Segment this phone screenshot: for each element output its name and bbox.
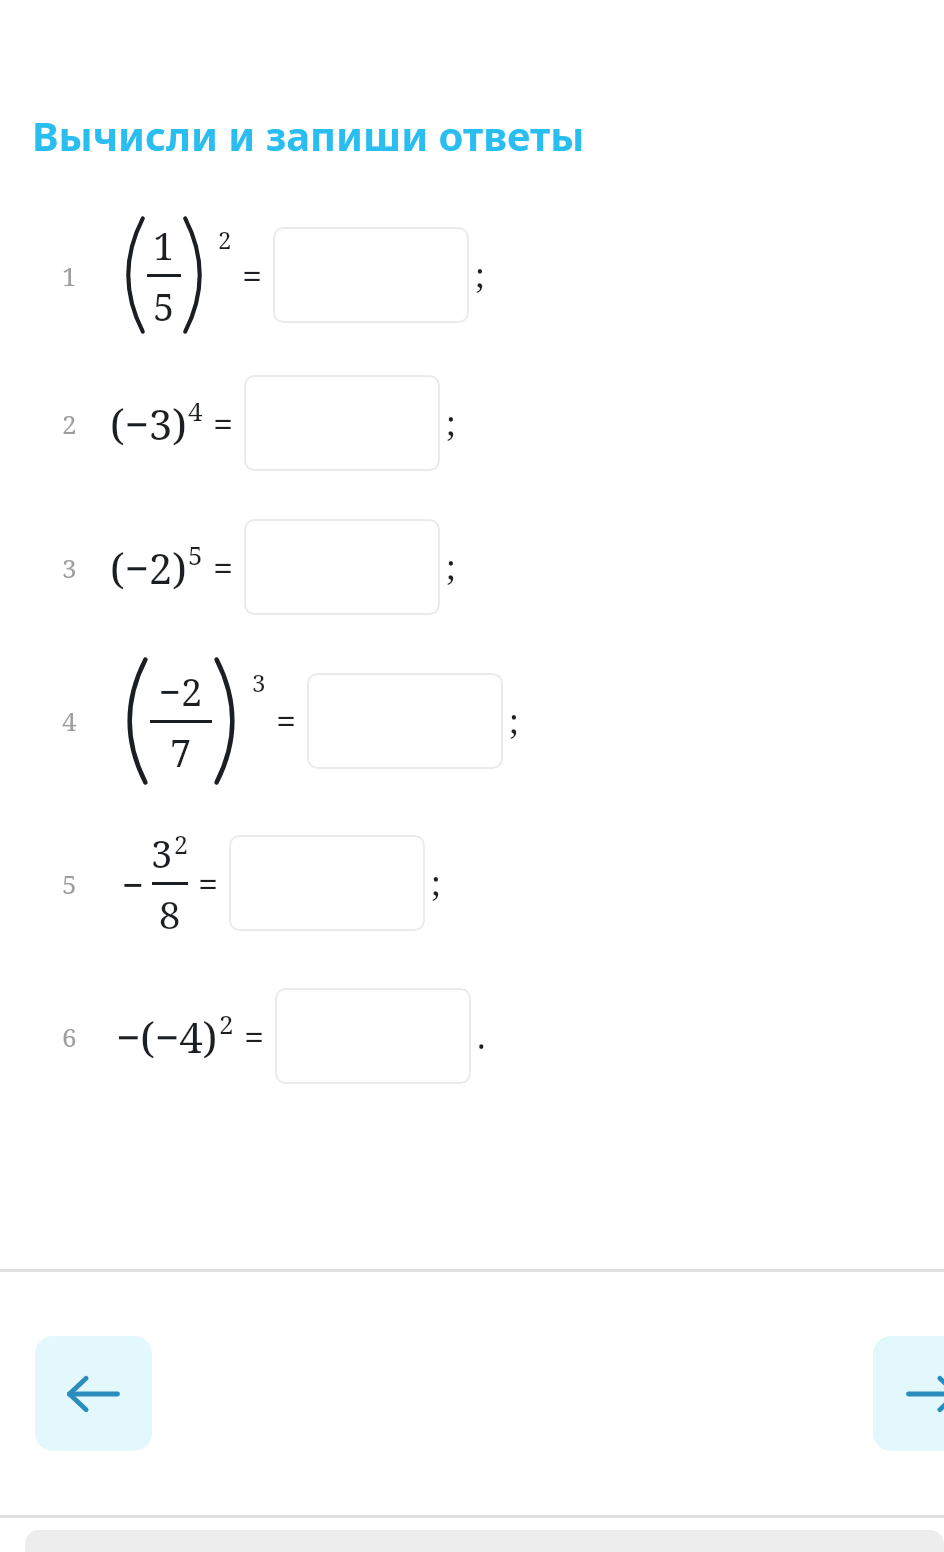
button[interactable] [244,519,440,615]
staticText: = [242,251,263,300]
staticText: 3 [62,550,96,585]
staticText: 2 [218,223,232,256]
staticText: 8 [159,888,181,940]
staticText: = [213,543,234,592]
staticText: 2 [174,827,188,861]
staticText: 5 [188,537,203,572]
button[interactable] [275,988,471,1084]
staticText: = [213,399,234,448]
staticText: = [198,859,219,908]
button[interactable] [273,227,469,323]
staticText: −(−4) [116,1008,218,1065]
button[interactable] [229,835,425,931]
staticText: ; [446,400,456,446]
staticText: 2 [219,1006,234,1041]
staticText: Вычисли и запиши ответы [32,108,585,162]
staticText: 2 [62,406,96,441]
staticText: = [244,1012,265,1061]
button[interactable]: Next [873,1336,944,1451]
staticText: = [276,696,297,745]
staticText: 1 [153,219,175,271]
staticText: . [477,1013,486,1059]
staticText: 7 [170,726,192,778]
staticText: ; [446,544,456,590]
staticText: (−3) [110,395,187,452]
staticText: ; [509,698,519,744]
staticText: 5 [62,866,96,901]
staticText: 4 [62,703,96,738]
staticText: 1 [62,258,96,293]
staticText: 5 [153,280,175,332]
staticText: ; [475,252,485,298]
staticText: − [122,858,145,910]
button[interactable] [244,375,440,471]
staticText: 3 [252,666,266,699]
staticText: ; [431,860,441,906]
staticText: (−2) [110,539,187,596]
staticText: 3 [151,827,173,879]
button[interactable]: Back [35,1336,152,1451]
staticText: −2 [159,665,203,717]
staticText: 6 [62,1019,96,1054]
staticText: 4 [188,393,203,428]
button[interactable] [307,673,503,769]
